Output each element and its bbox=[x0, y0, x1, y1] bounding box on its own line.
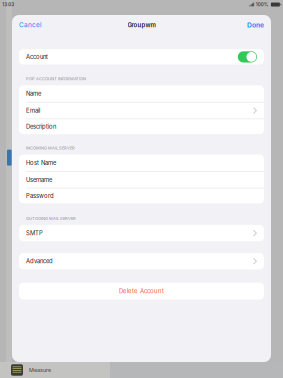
button[interactable]: Description bbox=[19, 119, 264, 134]
button[interactable]: Password bbox=[19, 188, 264, 203]
staticText: Done bbox=[247, 21, 264, 29]
staticText: Cancel bbox=[19, 21, 42, 29]
button[interactable]: Cancel bbox=[12, 15, 52, 35]
staticText: Measure bbox=[29, 367, 51, 373]
button[interactable]: Email bbox=[19, 102, 264, 118]
button[interactable]: Delete Account bbox=[19, 283, 264, 300]
staticText: Username bbox=[26, 176, 52, 183]
staticText: POP ACCOUNT INFORMATION bbox=[26, 76, 86, 81]
button[interactable]: Host Name bbox=[19, 154, 264, 171]
staticText: Delete Account bbox=[119, 287, 164, 295]
staticText: 100% bbox=[256, 2, 269, 7]
staticText: INCOMING MAIL SERVER bbox=[26, 145, 75, 150]
staticText: 13:03 bbox=[2, 2, 14, 7]
button[interactable]: SMTP bbox=[19, 225, 264, 241]
button[interactable]: Done bbox=[231, 15, 271, 35]
staticText: OUTGOING MAIL SERVER bbox=[26, 216, 76, 221]
staticText: Host Name bbox=[26, 159, 56, 166]
button[interactable]: Name bbox=[19, 85, 264, 102]
staticText: Password bbox=[26, 192, 54, 199]
button[interactable]: Measure bbox=[0, 362, 110, 378]
button[interactable]: Account bbox=[238, 51, 257, 62]
button[interactable]: Advanced bbox=[19, 253, 264, 269]
staticText: Account bbox=[26, 53, 48, 60]
button[interactable]: Username bbox=[19, 172, 264, 188]
staticText: Name bbox=[26, 90, 41, 97]
staticText: Groupwm bbox=[127, 21, 155, 29]
staticText: Description bbox=[26, 123, 56, 130]
staticText: Email bbox=[26, 107, 40, 114]
staticText: Advanced bbox=[26, 258, 53, 265]
staticText: SMTP bbox=[26, 230, 43, 237]
